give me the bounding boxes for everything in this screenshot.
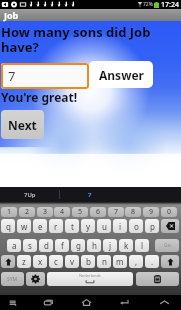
button[interactable]: Next bbox=[1, 110, 44, 139]
staticText: d bbox=[44, 240, 49, 251]
button[interactable]: k bbox=[119, 239, 133, 252]
button[interactable]: x bbox=[33, 255, 47, 268]
staticText: You're great! bbox=[1, 89, 78, 105]
staticText: k bbox=[124, 240, 129, 251]
staticText: a bbox=[12, 240, 17, 251]
staticText: 4 bbox=[60, 207, 65, 217]
staticText: o bbox=[134, 221, 139, 232]
button[interactable]: Home bbox=[79, 295, 93, 310]
staticText: 9 bbox=[149, 207, 154, 217]
staticText: n bbox=[102, 256, 107, 267]
staticText: b bbox=[86, 256, 91, 267]
staticText: f bbox=[61, 240, 64, 251]
staticText: 5 bbox=[78, 207, 83, 217]
button[interactable]: 7 bbox=[1, 63, 89, 89]
staticText: SYM bbox=[7, 276, 18, 283]
button[interactable]: 7 bbox=[60, 187, 120, 202]
button[interactable]: w bbox=[17, 219, 31, 233]
staticText: 7 bbox=[88, 191, 92, 199]
button[interactable]: Answer bbox=[89, 61, 153, 88]
button[interactable]: p bbox=[145, 219, 159, 233]
staticText: 7 bbox=[114, 207, 119, 217]
staticText: m bbox=[116, 256, 124, 267]
staticText: 3 bbox=[43, 207, 48, 217]
button[interactable]: y bbox=[81, 219, 95, 233]
button[interactable]: Menu bbox=[6, 295, 20, 310]
button[interactable]: 7 bbox=[108, 207, 124, 217]
button[interactable]: v bbox=[65, 255, 79, 268]
button[interactable]: l bbox=[135, 239, 149, 252]
button[interactable]: Shift bbox=[1, 255, 15, 268]
staticText: q bbox=[6, 221, 11, 232]
staticText: g bbox=[76, 240, 81, 251]
button[interactable]: 4 bbox=[54, 207, 70, 217]
button[interactable]: . bbox=[145, 255, 159, 268]
button[interactable]: Recent apps bbox=[41, 295, 55, 310]
button[interactable]: 3 bbox=[37, 207, 53, 217]
staticText: . bbox=[151, 256, 154, 267]
button[interactable]: 8 bbox=[125, 207, 141, 217]
staticText: h bbox=[92, 240, 97, 251]
staticText: Job bbox=[4, 9, 19, 21]
button[interactable]: 2 bbox=[19, 207, 35, 217]
button[interactable]: n bbox=[97, 255, 111, 268]
button[interactable]: Shift bbox=[161, 255, 179, 268]
button[interactable]: Space bbox=[47, 272, 133, 286]
button[interactable]: Backspace bbox=[161, 219, 179, 233]
staticText: 0 bbox=[167, 207, 172, 217]
button[interactable]: r bbox=[49, 219, 63, 233]
button[interactable]: j bbox=[103, 239, 117, 252]
staticText: y bbox=[86, 221, 91, 232]
button[interactable]: 6 bbox=[90, 207, 106, 217]
button[interactable]: i bbox=[113, 219, 127, 233]
button[interactable]: t bbox=[65, 219, 79, 233]
staticText: Nederlands bbox=[79, 273, 101, 278]
button[interactable]: 1 bbox=[1, 207, 17, 217]
staticText: Answer bbox=[99, 67, 144, 83]
button[interactable]: g bbox=[71, 239, 85, 252]
staticText: 7 bbox=[8, 67, 16, 85]
button[interactable]: h bbox=[87, 239, 101, 252]
button[interactable]: s bbox=[23, 239, 37, 252]
staticText: j bbox=[109, 240, 112, 251]
staticText: z bbox=[22, 256, 26, 267]
staticText: t bbox=[71, 221, 74, 232]
button[interactable]: o bbox=[129, 219, 143, 233]
staticText: c bbox=[54, 256, 58, 267]
button[interactable]: Go bbox=[155, 239, 179, 252]
staticText: l bbox=[141, 240, 144, 251]
staticText: , bbox=[135, 256, 138, 267]
button[interactable]: 9 bbox=[143, 207, 159, 217]
button[interactable]: z bbox=[17, 255, 31, 268]
button[interactable]: f bbox=[55, 239, 69, 252]
staticText: 17:24 bbox=[161, 0, 179, 9]
button[interactable]: d bbox=[39, 239, 53, 252]
button[interactable]: Settings bbox=[26, 272, 45, 286]
staticText: r bbox=[54, 221, 58, 232]
button[interactable]: c bbox=[49, 255, 63, 268]
button[interactable]: 0 bbox=[161, 207, 177, 217]
staticText: 72% bbox=[143, 1, 153, 8]
button[interactable]: m bbox=[113, 255, 127, 268]
button[interactable]: Enter bbox=[136, 272, 179, 286]
button[interactable]: , bbox=[129, 255, 143, 268]
staticText: Go bbox=[164, 242, 171, 249]
staticText: 6 bbox=[96, 207, 101, 217]
button[interactable]: 5 bbox=[72, 207, 88, 217]
staticText: i bbox=[119, 221, 122, 232]
button[interactable]: a bbox=[7, 239, 21, 252]
staticText: 7Up bbox=[24, 191, 36, 199]
button[interactable]: e bbox=[33, 219, 47, 233]
button[interactable]: b bbox=[81, 255, 95, 268]
button[interactable]: 7Up bbox=[0, 187, 59, 202]
button[interactable]: Back bbox=[117, 295, 131, 310]
button[interactable]: q bbox=[1, 219, 15, 233]
staticText: u bbox=[102, 221, 107, 232]
staticText: w bbox=[21, 221, 28, 232]
staticText: 8 bbox=[131, 207, 136, 217]
button[interactable]: SYM bbox=[1, 272, 24, 286]
staticText: 1 bbox=[7, 207, 12, 217]
button[interactable]: Hide keyboard bbox=[157, 295, 171, 310]
staticText: 2 bbox=[25, 207, 30, 217]
button[interactable]: u bbox=[97, 219, 111, 233]
